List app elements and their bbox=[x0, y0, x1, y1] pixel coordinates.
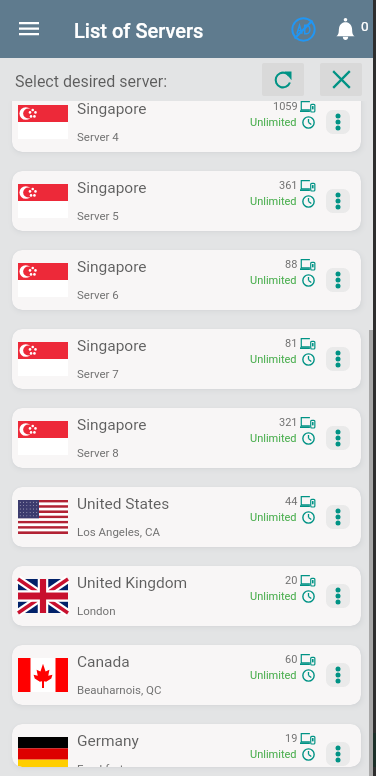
staticText: London bbox=[77, 604, 116, 617]
staticText: Singapore bbox=[77, 101, 147, 118]
staticText: 60 bbox=[285, 653, 298, 666]
staticText: Beauharnois, QC bbox=[77, 683, 162, 696]
button[interactable]: More options bbox=[326, 505, 350, 529]
button[interactable]: More options bbox=[326, 110, 350, 134]
button[interactable]: More options bbox=[326, 268, 350, 292]
staticText: 321 bbox=[279, 416, 298, 429]
staticText: 1059 bbox=[273, 101, 298, 113]
button[interactable]: Singapore bbox=[12, 101, 361, 152]
staticText: Server 4 bbox=[77, 130, 119, 143]
staticText: 88 bbox=[285, 258, 298, 271]
button[interactable]: United Kingdom bbox=[12, 566, 361, 626]
staticText: Unlimited bbox=[250, 116, 297, 129]
button[interactable]: More options bbox=[326, 347, 350, 371]
staticText: Singapore bbox=[77, 416, 147, 434]
button[interactable]: Canada bbox=[12, 645, 361, 705]
staticText: Los Angeles, CA bbox=[77, 525, 160, 538]
staticText: Server 5 bbox=[77, 209, 119, 222]
staticText: 0 bbox=[361, 18, 369, 34]
staticText: 361 bbox=[279, 179, 298, 192]
staticText: Unlimited bbox=[250, 353, 297, 366]
staticText: Select desired server: bbox=[15, 72, 168, 91]
button[interactable]: More options bbox=[326, 189, 350, 213]
button[interactable]: Singapore bbox=[12, 171, 361, 231]
staticText: 20 bbox=[285, 574, 298, 587]
staticText: Singapore bbox=[77, 337, 147, 355]
button[interactable]: More options bbox=[326, 663, 350, 687]
button[interactable]: More options bbox=[326, 742, 350, 766]
button[interactable]: Notifications bbox=[329, 13, 361, 45]
button[interactable]: More options bbox=[326, 584, 350, 608]
staticText: Unlimited bbox=[250, 590, 297, 603]
staticText: Server 8 bbox=[77, 446, 119, 459]
staticText: Server 7 bbox=[77, 367, 119, 380]
staticText: United States bbox=[77, 495, 170, 513]
button[interactable]: Singapore bbox=[12, 408, 361, 468]
staticText: Frankfurt bbox=[77, 762, 124, 767]
staticText: Server 6 bbox=[77, 288, 119, 301]
staticText: Unlimited bbox=[250, 748, 297, 761]
staticText: Canada bbox=[77, 653, 130, 671]
button[interactable]: Remove ads bbox=[288, 14, 318, 44]
staticText: Unlimited bbox=[250, 274, 297, 287]
button[interactable]: Refresh server list bbox=[262, 63, 304, 96]
staticText: United Kingdom bbox=[77, 574, 188, 592]
button[interactable]: Germany bbox=[12, 724, 361, 767]
staticText: 44 bbox=[285, 495, 298, 508]
button[interactable]: Close bbox=[320, 63, 362, 96]
staticText: Unlimited bbox=[250, 669, 297, 682]
button[interactable]: United States bbox=[12, 487, 361, 547]
staticText: Unlimited bbox=[250, 511, 297, 524]
staticText: Unlimited bbox=[250, 195, 297, 208]
button[interactable]: More options bbox=[326, 426, 350, 450]
staticText: List of Servers bbox=[74, 19, 204, 42]
button[interactable]: Singapore bbox=[12, 250, 361, 310]
staticText: Singapore bbox=[77, 258, 147, 276]
staticText: 19 bbox=[285, 732, 298, 745]
staticText: Singapore bbox=[77, 179, 147, 197]
button[interactable]: Open navigation menu bbox=[7, 7, 51, 51]
staticText: Unlimited bbox=[250, 432, 297, 445]
staticText: Germany bbox=[77, 732, 139, 750]
button[interactable]: Singapore bbox=[12, 329, 361, 389]
staticText: 81 bbox=[285, 337, 298, 350]
